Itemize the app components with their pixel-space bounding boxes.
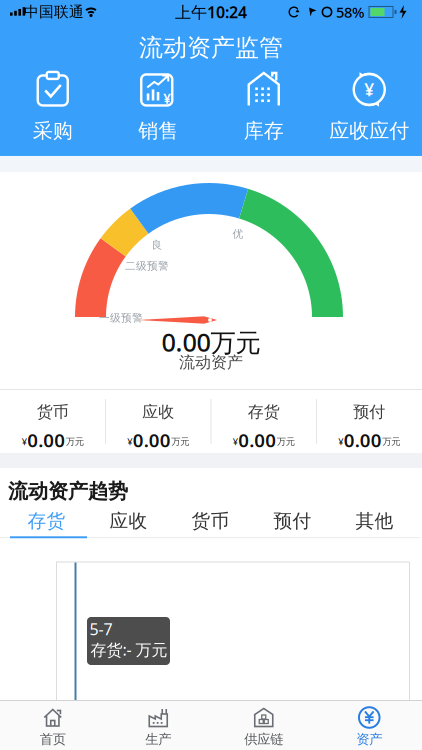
- staticText: 应收: [142, 402, 174, 422]
- button[interactable]: 应收: [87, 506, 169, 536]
- button[interactable]: 存货: [5, 506, 87, 536]
- staticText: 生产: [145, 731, 171, 747]
- staticText: ¥: [233, 435, 238, 448]
- staticText: 供应链: [244, 731, 283, 747]
- button[interactable]: 预付: [251, 506, 333, 536]
- staticText: 0.00: [27, 428, 65, 452]
- staticText: 采购: [33, 118, 73, 143]
- staticText: 流动资产趋势: [8, 479, 128, 504]
- button[interactable]: 资产: [316, 706, 422, 747]
- staticText: 应收: [109, 509, 147, 532]
- staticText: ¥: [163, 90, 171, 107]
- button[interactable]: 首页: [0, 706, 105, 747]
- staticText: 58%: [336, 2, 364, 22]
- staticText: 0.00: [238, 428, 276, 452]
- staticText: 0.00万元: [161, 325, 260, 359]
- staticText: 库存: [244, 118, 284, 143]
- staticText: 货币: [191, 509, 229, 532]
- button[interactable]: 其他: [333, 506, 415, 536]
- staticText: ¥: [364, 78, 374, 101]
- staticText: 优: [232, 227, 243, 240]
- staticText: ¥: [22, 435, 27, 448]
- staticText: 0.00: [344, 428, 382, 452]
- staticText: 万元: [171, 436, 189, 447]
- staticText: 流动资产监管: [139, 33, 283, 62]
- staticText: 万元: [382, 436, 400, 447]
- staticText: 首页: [40, 731, 66, 747]
- staticText: 5-7: [89, 618, 112, 640]
- staticText: 预付: [273, 509, 311, 532]
- staticText: 0.00: [133, 428, 171, 452]
- button[interactable]: 生产: [105, 706, 211, 747]
- staticText: 资产: [356, 731, 382, 747]
- button[interactable]: 货币: [169, 506, 251, 536]
- button[interactable]: 供应链: [211, 706, 316, 747]
- staticText: 应收应付: [329, 118, 409, 143]
- staticText: 预付: [353, 402, 385, 422]
- staticText: 销售: [138, 118, 178, 143]
- button[interactable]: 采购: [0, 70, 105, 143]
- staticText: 存货: [248, 402, 280, 422]
- staticText: 存货:- 万元: [90, 639, 167, 660]
- button[interactable]: ¥: [105, 70, 211, 143]
- staticText: 万元: [277, 436, 295, 447]
- staticText: 二级预警: [125, 259, 169, 272]
- staticText: ¥: [127, 435, 132, 448]
- button[interactable]: 库存: [211, 70, 316, 143]
- staticText: 万元: [66, 436, 84, 447]
- staticText: ¥: [338, 435, 343, 448]
- staticText: 存货: [27, 509, 65, 532]
- staticText: 良: [151, 238, 162, 251]
- staticText: 上午10:24: [175, 1, 247, 23]
- staticText: 其他: [355, 509, 393, 532]
- staticText: 一级预警: [99, 311, 143, 324]
- staticText: 中国联通: [24, 3, 84, 21]
- staticText: 流动资产: [179, 353, 243, 372]
- staticText: 货币: [37, 402, 69, 422]
- button[interactable]: ¥: [316, 70, 422, 143]
